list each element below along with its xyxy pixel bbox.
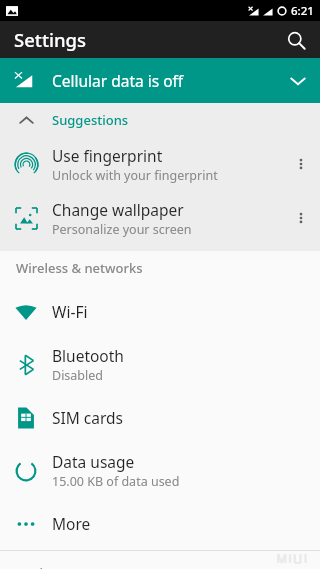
staticText: More: [52, 513, 91, 534]
button[interactable]: Data usage: [0, 444, 320, 497]
button[interactable]: Wi-Fi: [0, 285, 320, 338]
staticText: Use fingerprint: [52, 145, 163, 166]
staticText: Data usage: [52, 451, 135, 472]
staticText: Change wallpaper: [52, 199, 184, 220]
staticText: Settings: [14, 27, 87, 52]
staticText: SIM cards: [52, 407, 124, 428]
staticText: 6:21: [291, 3, 314, 19]
button[interactable]: Bluetooth: [0, 338, 320, 391]
staticText: Wireless & networks: [16, 259, 143, 277]
staticText: Cellular data is off: [52, 70, 184, 91]
staticText: Device: [16, 564, 57, 569]
button[interactable]: More options: [282, 191, 320, 245]
button[interactable]: More: [0, 497, 320, 550]
button[interactable]: Cellular data is off: [0, 58, 320, 103]
staticText: 15.00 KB of data used: [52, 473, 180, 490]
button[interactable]: SIM cards: [0, 391, 320, 444]
staticText: Personalize your screen: [52, 221, 192, 238]
button[interactable]: More options: [282, 137, 320, 191]
staticText: Wi-Fi: [52, 301, 88, 322]
staticText: Disabled: [52, 367, 104, 384]
button[interactable]: Suggestions: [0, 103, 320, 137]
button[interactable]: Use fingerprint: [0, 137, 320, 191]
button[interactable]: Change wallpaper: [0, 191, 320, 245]
staticText: Bluetooth: [52, 345, 124, 366]
staticText: Suggestions: [52, 111, 129, 129]
button[interactable]: Search: [278, 22, 314, 58]
staticText: Unlock with your fingerprint: [52, 167, 218, 184]
